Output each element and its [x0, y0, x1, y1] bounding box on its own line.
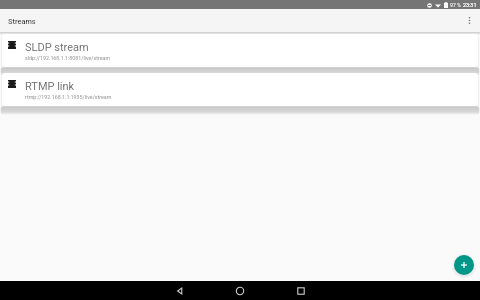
staticText: 23:31 [463, 2, 477, 8]
button[interactable]: RTMP link [2, 73, 478, 106]
button[interactable]: Recents [289, 281, 313, 300]
staticText: rtmp://192.168.1.1:1935/live/stream [25, 94, 112, 100]
staticText: Streams [8, 17, 36, 26]
staticText: sldp://192.168.1.1:8081/live/stream [25, 55, 111, 61]
button[interactable]: Add stream [450, 251, 478, 279]
button[interactable]: Home [228, 281, 252, 300]
staticText: 97 % [450, 2, 461, 8]
button[interactable]: More options [458, 9, 480, 32]
staticText: RTMP link [25, 80, 75, 93]
button[interactable]: SLDP stream [2, 34, 478, 67]
staticText: SLDP stream [25, 41, 89, 54]
button[interactable]: Back [168, 281, 192, 300]
